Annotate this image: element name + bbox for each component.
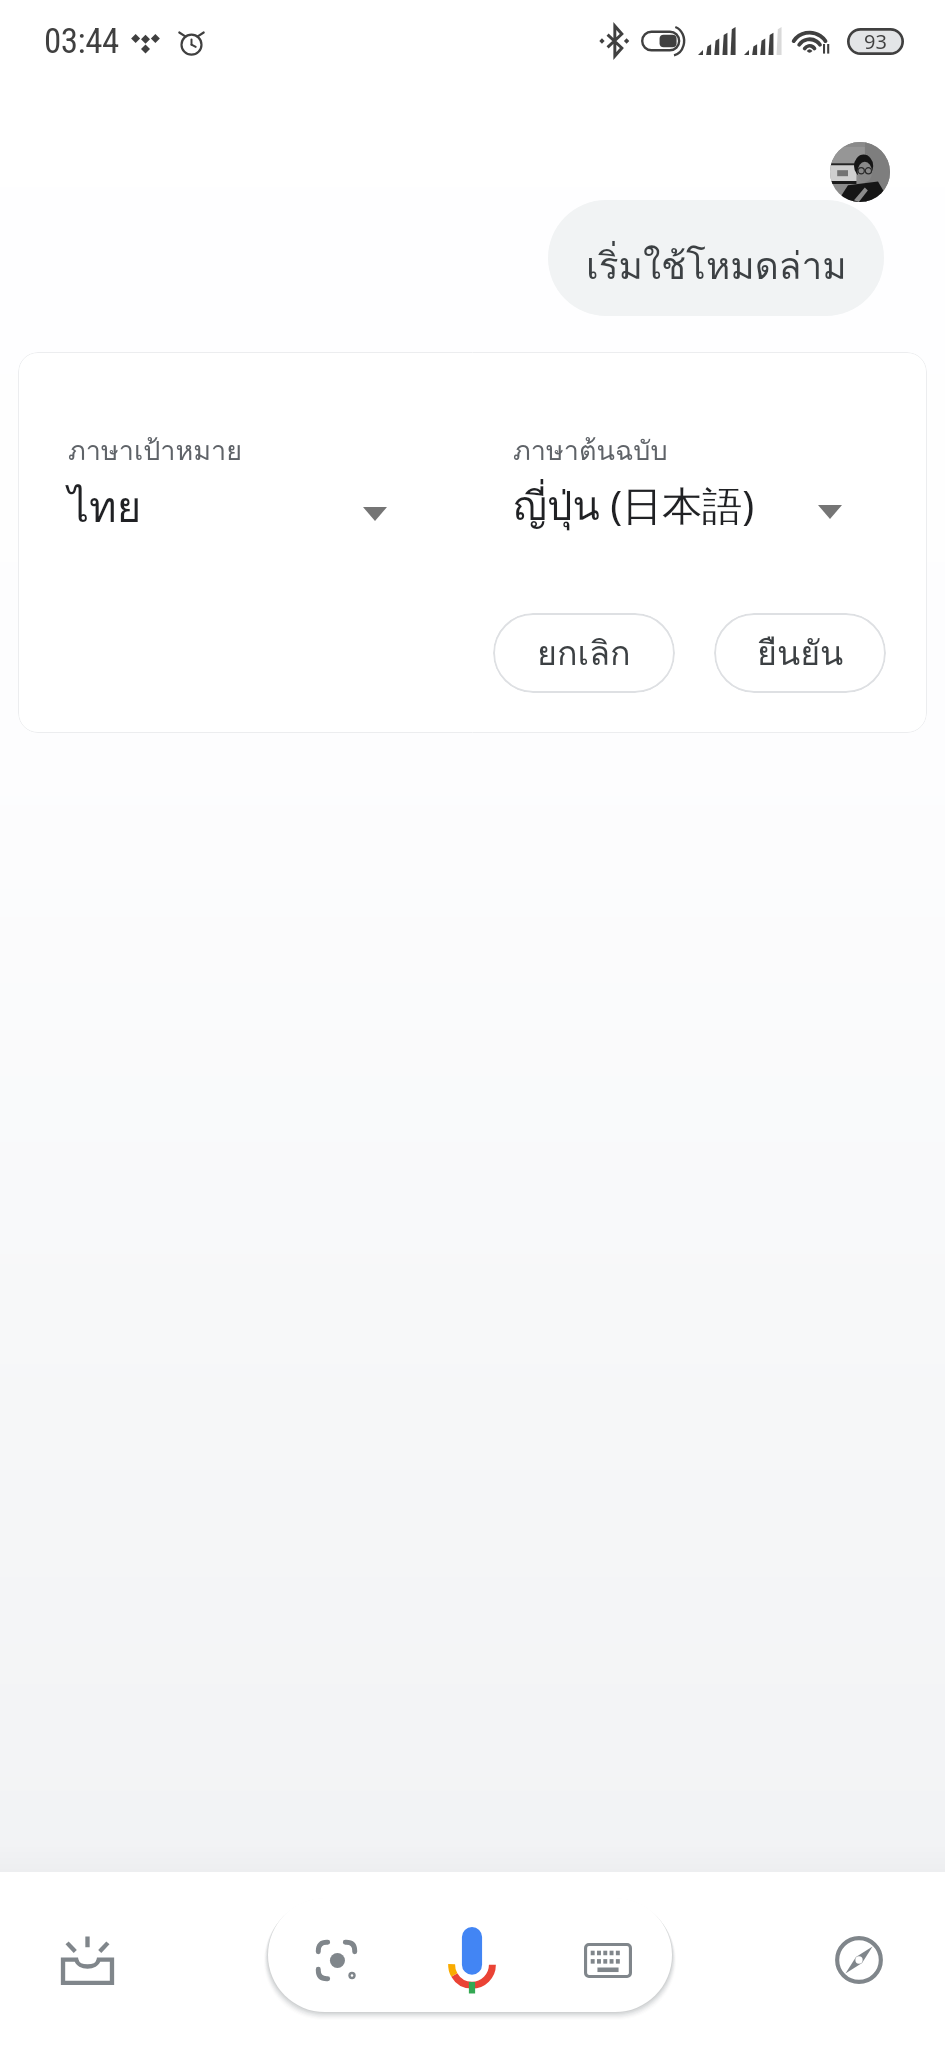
- staticText: ยืนยัน: [757, 626, 844, 680]
- button[interactable]: Voice search: [430, 1913, 514, 1997]
- staticText: เริ่มใช้โหมดล่าม: [586, 236, 847, 295]
- staticText: ไทย: [68, 474, 142, 541]
- staticText: 93: [864, 28, 887, 55]
- staticText: ญี่ปุ่น (日本語): [513, 474, 755, 538]
- staticText: 03:44: [44, 21, 119, 62]
- staticText: ยกเลิก: [537, 626, 631, 680]
- button[interactable]: Updates: [42, 1915, 132, 2005]
- staticText: ภาษาเป้าหมาย: [68, 429, 243, 472]
- button[interactable]: ภาษาต้นฉบับ: [513, 429, 842, 538]
- button[interactable]: ภาษาเป้าหมาย: [68, 429, 387, 541]
- button[interactable]: Keyboard: [566, 1913, 650, 1997]
- button[interactable]: ยืนยัน: [714, 613, 886, 693]
- button[interactable]: เริ่มใช้โหมดล่าม: [548, 200, 884, 316]
- staticText: ภาษาต้นฉบับ: [513, 429, 668, 472]
- button[interactable]: Search with Google Lens: [293, 1913, 377, 1997]
- button[interactable]: Google Account: [830, 142, 890, 202]
- button[interactable]: Explore: [814, 1914, 904, 2004]
- button[interactable]: ยกเลิก: [493, 613, 675, 693]
